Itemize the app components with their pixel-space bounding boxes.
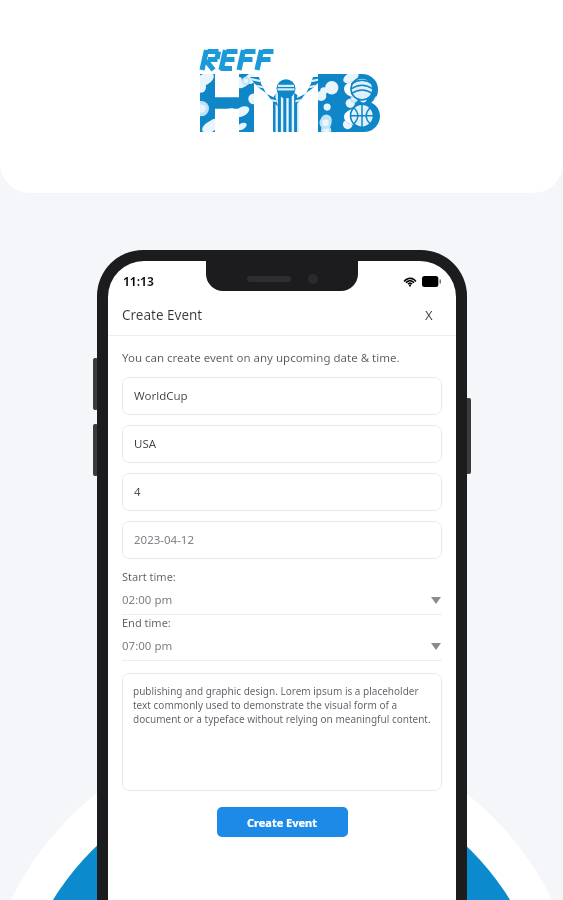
button[interactable]: Create Event — [217, 807, 348, 837]
staticText: Create Event — [122, 306, 203, 324]
staticText: WorldCup — [134, 388, 188, 404]
button[interactable]: publishing and graphic design. Lorem ips… — [122, 673, 442, 791]
staticText: publishing and graphic design. Lorem ips… — [133, 684, 433, 726]
staticText: 07:00 pm — [122, 638, 173, 654]
staticText: Start time: — [122, 569, 176, 584]
button[interactable]: 4 — [122, 473, 442, 511]
button[interactable]: USA — [122, 425, 442, 463]
button[interactable]: Close — [416, 302, 442, 328]
staticText: 02:00 pm — [122, 592, 173, 608]
staticText: X — [425, 306, 433, 324]
staticText: You can create event on any upcoming dat… — [122, 350, 400, 366]
button[interactable]: 2023-04-12 — [122, 521, 442, 559]
staticText: 4 — [134, 484, 141, 500]
button[interactable]: WorldCup — [122, 377, 442, 415]
staticText: USA — [134, 436, 157, 452]
staticText: Create Event — [247, 815, 318, 830]
button[interactable]: 07:00 pm — [122, 632, 442, 660]
staticText: 2023-04-12 — [134, 532, 195, 548]
staticText: End time: — [122, 615, 171, 630]
staticText: 11:13 — [123, 273, 154, 289]
button[interactable]: 02:00 pm — [122, 586, 442, 614]
